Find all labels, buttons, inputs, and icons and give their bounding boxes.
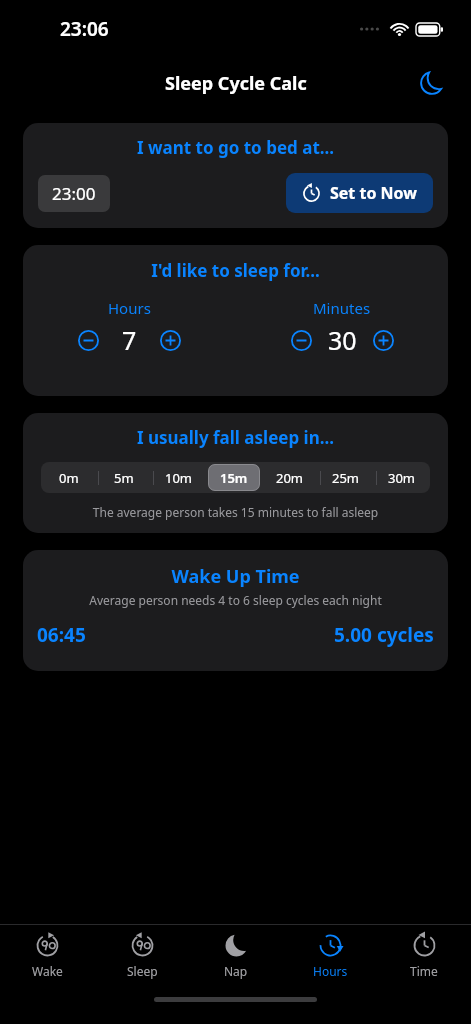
staticText: Set to Now <box>330 182 417 204</box>
staticText: 15m <box>220 469 248 487</box>
button[interactable]: Dark mode <box>411 62 453 104</box>
button[interactable]: 30m <box>376 464 428 491</box>
button[interactable]: 25m <box>320 464 372 491</box>
staticText: Sleep <box>127 963 158 979</box>
button[interactable]: 5m <box>98 464 149 491</box>
staticText: Hours <box>108 298 151 318</box>
staticText: The average person takes 15 minutes to f… <box>23 504 448 520</box>
staticText: Minutes <box>313 298 371 318</box>
staticText: Wake <box>32 963 63 979</box>
staticText: 5m <box>114 469 134 487</box>
staticText: 23:06 <box>60 16 109 42</box>
button[interactable]: 20m <box>264 464 316 491</box>
button[interactable]: Hours <box>283 925 377 987</box>
staticText: Time <box>410 963 438 979</box>
button[interactable]: 23:00 <box>38 175 110 212</box>
staticText: Nap <box>224 963 248 979</box>
button[interactable]: Decrease Minutes <box>283 322 319 358</box>
button[interactable]: Wake <box>0 925 95 987</box>
staticText: Average person needs 4 to 6 sleep cycles… <box>23 592 448 608</box>
button[interactable]: 0m <box>43 464 94 491</box>
staticText: I'd like to sleep for... <box>23 259 448 282</box>
staticText: 7 <box>122 323 137 357</box>
staticText: I usually fall asleep in... <box>23 426 448 449</box>
button[interactable]: 10m <box>153 464 204 491</box>
staticText: Sleep Cycle Calc <box>165 71 307 96</box>
staticText: 0m <box>59 469 79 487</box>
staticText: 10m <box>165 469 193 487</box>
staticText: 5.00 cycles <box>334 622 434 648</box>
button[interactable]: Increase Hours <box>152 322 188 358</box>
staticText: 30m <box>388 469 416 487</box>
staticText: Wake Up Time <box>23 564 448 589</box>
button[interactable]: Time <box>377 925 471 987</box>
button[interactable]: Increase Minutes <box>365 322 401 358</box>
button[interactable]: Set to Now <box>286 173 433 213</box>
button[interactable]: Sleep <box>95 925 189 987</box>
staticText: 25m <box>332 469 360 487</box>
staticText: 23:00 <box>52 182 96 205</box>
staticText: 06:45 <box>37 622 86 648</box>
button[interactable]: Nap <box>189 925 283 987</box>
staticText: I want to go to bed at... <box>23 136 448 159</box>
staticText: 30 <box>328 323 357 357</box>
staticText: 20m <box>276 469 304 487</box>
button[interactable]: Decrease Hours <box>70 322 106 358</box>
button[interactable]: 15m <box>208 464 260 491</box>
staticText: Hours <box>313 963 348 979</box>
